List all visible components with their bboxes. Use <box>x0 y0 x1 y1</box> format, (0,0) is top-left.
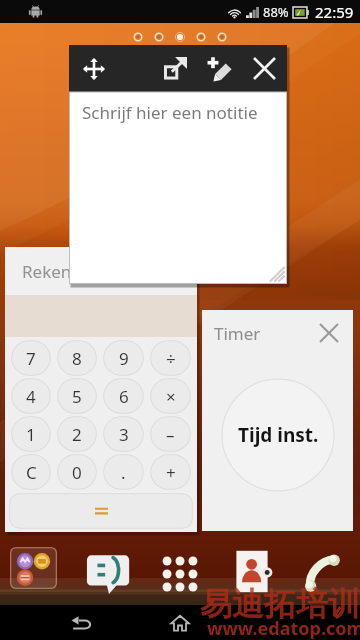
button[interactable]: Tijd inst. <box>221 378 335 492</box>
button[interactable]: Home <box>150 605 210 640</box>
button[interactable]: Media folder <box>10 547 57 589</box>
staticText: + <box>166 461 176 484</box>
staticText: 9 <box>119 347 129 370</box>
button[interactable]: Messaging <box>85 552 133 594</box>
staticText: C <box>26 461 37 484</box>
button[interactable]: 6 <box>103 378 144 414</box>
button[interactable]: 4 <box>11 378 51 414</box>
button[interactable]: 1 <box>11 416 51 452</box>
button[interactable]: Phone <box>301 551 343 593</box>
staticText: 6 <box>119 385 129 408</box>
staticText: Timer <box>214 322 261 345</box>
button[interactable]: 9 <box>103 340 144 376</box>
button[interactable]: New note <box>197 45 241 92</box>
button[interactable]: C <box>11 454 51 490</box>
staticText: 8 <box>72 347 82 370</box>
button[interactable]: Apps <box>162 556 198 592</box>
button[interactable]: 5 <box>57 378 97 414</box>
button[interactable]: Close <box>313 317 345 349</box>
staticText: Tijd inst. <box>238 422 319 448</box>
button[interactable]: × <box>150 378 191 414</box>
staticText: 0 <box>72 461 82 484</box>
staticText: Schrijf hier een notitie <box>82 101 258 124</box>
button[interactable]: Schrijf hier een notitie <box>69 92 287 284</box>
staticText: 5 <box>72 385 82 408</box>
button[interactable]: Contacts <box>234 549 274 594</box>
button[interactable]: + <box>150 454 191 490</box>
staticText: 7 <box>26 347 36 370</box>
button[interactable]: 0 <box>57 454 97 490</box>
button[interactable]: ÷ <box>150 340 191 376</box>
button[interactable]: 2 <box>57 416 97 452</box>
staticText: 3 <box>119 423 129 446</box>
staticText: 88% <box>263 3 289 21</box>
button[interactable]: 3 <box>103 416 144 452</box>
staticText: . <box>121 461 126 484</box>
staticText: 1 <box>26 423 36 446</box>
button[interactable]: – <box>150 416 191 452</box>
staticText: × <box>166 385 176 408</box>
button[interactable]: Rekenmachine <box>5 247 197 295</box>
staticText: ÷ <box>166 347 176 370</box>
button[interactable]: 8 <box>57 340 97 376</box>
staticText: 22:59 <box>315 2 354 22</box>
button[interactable]: Close <box>242 45 286 92</box>
button[interactable]: . <box>103 454 144 490</box>
button[interactable]: Open in app <box>154 45 196 92</box>
staticText: 易迪拓培训 <box>200 584 360 624</box>
staticText: 4 <box>26 385 36 408</box>
staticText: 2 <box>72 423 82 446</box>
staticText: – <box>166 423 175 446</box>
button[interactable] <box>9 493 193 529</box>
button[interactable]: Back <box>52 605 112 640</box>
staticText: Rekenmachine <box>22 260 140 283</box>
button[interactable]: Move <box>72 45 116 92</box>
staticText: www.edatop.com <box>207 616 360 640</box>
button[interactable]: 7 <box>11 340 51 376</box>
